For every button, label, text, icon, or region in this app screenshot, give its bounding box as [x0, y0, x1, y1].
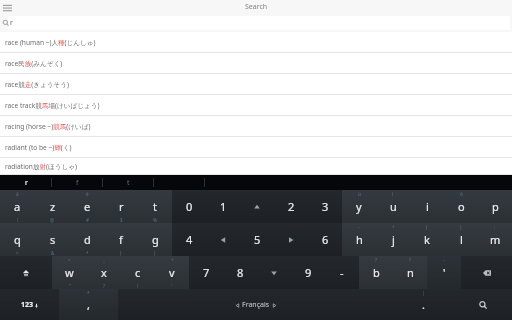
button[interactable]: Move cursor right [274, 223, 308, 256]
staticText: ù [358, 191, 361, 197]
staticText: - [443, 257, 445, 263]
button[interactable]: r [0, 175, 52, 190]
button[interactable]: radiant (to be ~)輝(く) [0, 137, 512, 158]
button[interactable]: $ [104, 190, 138, 223]
button[interactable]: 1 [206, 190, 240, 223]
staticText: e [84, 199, 91, 214]
staticText: ( [426, 224, 428, 230]
button[interactable]: ? [393, 256, 427, 289]
button[interactable]: ) [444, 223, 478, 256]
button[interactable]: p [478, 190, 512, 223]
button[interactable]: % [138, 190, 172, 223]
button[interactable]: - [427, 256, 461, 289]
staticText: w [65, 265, 74, 280]
staticText: g [152, 232, 159, 247]
button[interactable]: ù [342, 190, 376, 223]
staticText: _ [103, 257, 106, 263]
button[interactable]: Backspace [461, 256, 512, 289]
staticText: d [84, 232, 91, 247]
staticText: * [86, 250, 89, 256]
button[interactable]: _ [87, 256, 121, 289]
button[interactable]: ) [138, 223, 172, 256]
button[interactable]: 4 [172, 223, 206, 256]
staticText: 3 [322, 199, 329, 214]
staticText: p [492, 199, 499, 214]
staticText: ? [103, 283, 105, 289]
button[interactable]: 2 [274, 190, 308, 223]
staticText: - [358, 224, 360, 230]
staticText: r [10, 18, 13, 28]
button[interactable]: * [70, 223, 104, 256]
staticText: ! [17, 217, 19, 223]
button[interactable]: ? [359, 256, 393, 289]
button[interactable]: t [103, 175, 154, 190]
button[interactable]: ! [121, 256, 155, 289]
staticText: 8 [237, 265, 244, 280]
staticText: : [494, 224, 496, 230]
button[interactable]: ^ [0, 223, 35, 256]
staticText: . [422, 297, 425, 312]
staticText: r [25, 178, 28, 188]
button[interactable]: | [394, 289, 453, 320]
staticText: & [51, 250, 55, 256]
staticText: r [119, 199, 124, 214]
button[interactable]: : [478, 223, 512, 256]
button[interactable]: Open navigation drawer [0, 0, 14, 14]
staticText: radiant (to be ~)輝(く) [5, 143, 72, 152]
button[interactable]: Move cursor up [240, 190, 274, 223]
button[interactable]: 123 [0, 289, 59, 320]
staticText: x [101, 265, 107, 280]
button[interactable]: é [70, 190, 104, 223]
button[interactable]: * [59, 289, 118, 320]
staticText: @ [50, 217, 55, 223]
button[interactable]: ( [410, 223, 444, 256]
staticText: ' [171, 283, 173, 289]
button[interactable]: ì [376, 190, 410, 223]
button[interactable]: Move cursor down [257, 256, 291, 289]
button[interactable]: Shift [0, 256, 52, 289]
button[interactable]: & [35, 223, 70, 256]
button[interactable]: racing (horse ~)競馬(けいば) [0, 116, 512, 137]
button[interactable]: 9 [291, 256, 325, 289]
staticText: m [490, 232, 501, 247]
staticText: a [14, 199, 21, 214]
button[interactable]: radiation放射(ほうしゃ) [0, 158, 512, 175]
staticText: u [390, 199, 397, 214]
staticText: Français [242, 300, 270, 310]
staticText: Search [245, 2, 268, 12]
button[interactable]: à [0, 190, 35, 223]
button[interactable]: 6 [308, 223, 342, 256]
button[interactable]: 8 [223, 256, 257, 289]
staticText: race track競馬場(けいばじょう) [5, 101, 100, 110]
staticText: = [68, 257, 71, 263]
staticText: 2 [288, 199, 295, 214]
staticText: ( [120, 250, 122, 256]
staticText: s [50, 232, 56, 247]
button[interactable]: 0 [172, 190, 206, 223]
button[interactable]: race民族(みんぞく) [0, 53, 512, 74]
button[interactable]: + [155, 256, 189, 289]
staticText: ? [409, 257, 411, 263]
staticText: race (human ~)人種(じんしゅ) [5, 38, 96, 47]
button[interactable]: race track競馬場(けいばじょう) [0, 95, 512, 116]
button[interactable]: + [376, 223, 410, 256]
button[interactable]: 7 [189, 256, 223, 289]
button[interactable]: f [52, 175, 103, 190]
button[interactable]: 3 [308, 190, 342, 223]
button[interactable]: race (human ~)人種(じんしゅ) [0, 32, 512, 53]
button[interactable]: 5 [240, 223, 274, 256]
button[interactable]: @ [35, 190, 70, 223]
button[interactable]: i [410, 190, 444, 223]
staticText: | [422, 290, 425, 296]
button[interactable]: Move cursor left [206, 223, 240, 256]
button[interactable]: ô [444, 190, 478, 223]
button[interactable]: ( [104, 223, 138, 256]
button[interactable]: Français [118, 289, 394, 320]
staticText: - [340, 265, 344, 280]
button[interactable]: = [52, 256, 87, 289]
button[interactable]: - [342, 223, 376, 256]
button[interactable]: - [325, 256, 359, 289]
button[interactable]: race競走(きょうそう) [0, 74, 512, 95]
button[interactable]: Search [453, 289, 512, 320]
button[interactable] [154, 175, 205, 190]
